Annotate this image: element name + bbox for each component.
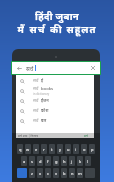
button[interactable]: t — [49, 144, 55, 154]
button[interactable]: a — [21, 156, 27, 166]
other: Back — [17, 66, 22, 71]
staticText: y — [59, 147, 62, 152]
staticText: books — [41, 86, 54, 92]
staticText: e — [35, 147, 38, 152]
button[interactable]: सर्च — [16, 116, 94, 126]
button[interactable]: o — [81, 144, 87, 154]
staticText: t — [51, 147, 53, 152]
button[interactable]: q — [17, 144, 23, 154]
button[interactable]: i — [73, 144, 79, 154]
button[interactable]: सर्च — [16, 106, 94, 116]
staticText: in dictionary — [33, 92, 50, 96]
button[interactable]: सर्च — [16, 96, 94, 106]
button[interactable]: y — [57, 144, 63, 154]
staticText: k — [79, 159, 82, 164]
staticText: सर्च — [33, 78, 39, 84]
staticText: d — [39, 159, 42, 164]
button[interactable]: m — [77, 168, 83, 178]
button[interactable]: p — [89, 144, 95, 154]
button[interactable]: b — [61, 168, 67, 178]
button[interactable]: f — [45, 156, 51, 166]
staticText: ई — [41, 78, 44, 84]
staticText: f — [47, 159, 49, 164]
staticText: कोश — [41, 108, 49, 114]
staticText: v — [55, 171, 58, 176]
button[interactable]: w — [25, 144, 31, 154]
staticText: j — [71, 159, 73, 164]
staticText: x — [39, 171, 42, 176]
other: Clear — [91, 66, 95, 70]
button[interactable]: u — [65, 144, 71, 154]
staticText: a — [23, 159, 26, 164]
button[interactable]: s — [29, 156, 35, 166]
button[interactable]: k — [77, 156, 83, 166]
button[interactable]: h — [61, 156, 67, 166]
staticText: सर्च शब्द | किताब — [18, 134, 38, 138]
button[interactable]: n — [69, 168, 75, 178]
staticText: b — [63, 171, 66, 176]
button[interactable]: Shift — [17, 168, 27, 178]
staticText: u — [67, 147, 70, 152]
button[interactable]: l — [85, 156, 91, 166]
staticText: सर्च — [33, 98, 39, 104]
staticText: i — [75, 147, 77, 152]
button[interactable]: d — [37, 156, 43, 166]
staticText: h — [63, 159, 66, 164]
staticText: बार — [41, 118, 47, 124]
staticText: c — [47, 171, 49, 176]
button[interactable]: सर्च — [16, 86, 94, 96]
button[interactable]: Back — [12, 62, 100, 74]
button[interactable]: r — [41, 144, 47, 154]
staticText: m — [78, 171, 82, 176]
button[interactable]: z — [29, 168, 35, 178]
staticText: सर्च — [84, 134, 88, 138]
staticText: सर्च — [33, 108, 39, 114]
button[interactable]: j — [69, 156, 75, 166]
button[interactable]: e — [33, 144, 39, 154]
staticText: सर्च — [26, 65, 34, 72]
staticText: w — [26, 147, 30, 152]
staticText: o — [83, 147, 86, 152]
button[interactable]: v — [53, 168, 59, 178]
staticText: ईंजन — [41, 98, 49, 104]
staticText: s — [31, 159, 33, 164]
staticText: r — [43, 147, 45, 152]
staticText: सर्च — [33, 86, 39, 92]
staticText: सर्च — [33, 118, 39, 124]
button[interactable]: c — [45, 168, 51, 178]
staticText: हिंदी जुबान — [35, 10, 79, 23]
staticText: q — [19, 147, 22, 152]
button[interactable]: g — [53, 156, 59, 166]
button[interactable]: x — [37, 168, 43, 178]
staticText: g — [55, 159, 58, 164]
staticText: l — [87, 159, 89, 164]
staticText: n — [71, 171, 74, 176]
button[interactable]: सर्च — [16, 76, 94, 86]
staticText: p — [91, 147, 94, 152]
staticText: मैं सर्च की सहूलत — [17, 23, 97, 36]
staticText: z — [31, 171, 33, 176]
